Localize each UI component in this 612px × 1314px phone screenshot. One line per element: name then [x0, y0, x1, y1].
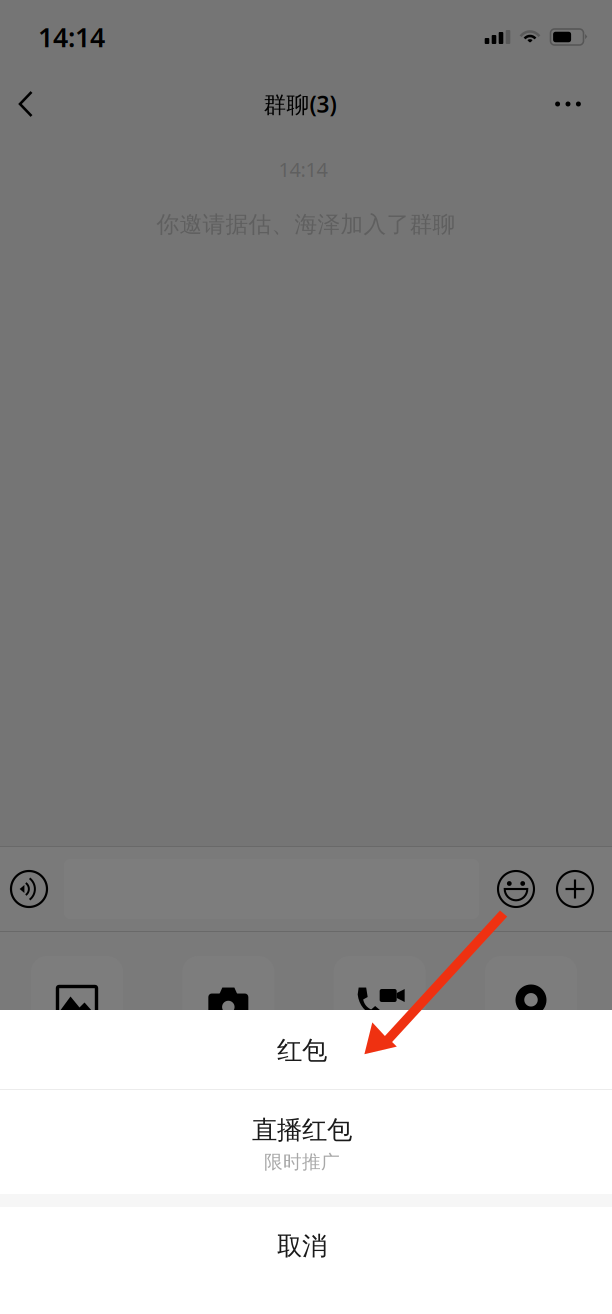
- button[interactable]: 直播红包: [0, 1090, 612, 1194]
- button[interactable]: Location: [485, 956, 577, 1048]
- staticText: 14:14: [38, 19, 105, 55]
- staticText: 直播红包: [252, 1114, 352, 1146]
- staticText: 群聊(3): [263, 89, 336, 119]
- staticText: 14:14: [278, 156, 327, 183]
- button[interactable]: Camera: [182, 956, 274, 1048]
- button[interactable]: Photos: [31, 956, 123, 1048]
- staticText: 红包: [277, 1035, 327, 1066]
- button[interactable]: Back: [0, 78, 52, 130]
- button[interactable]: Video call: [334, 956, 426, 1048]
- staticText: 限时推广: [264, 1151, 340, 1173]
- button[interactable]: More options: [556, 870, 594, 908]
- button[interactable]: Voice message: [10, 870, 48, 908]
- button[interactable]: 红包: [0, 1010, 612, 1089]
- button[interactable]: Emoji: [497, 870, 535, 908]
- button[interactable]: 取消: [0, 1207, 612, 1283]
- button[interactable]: More: [542, 78, 594, 130]
- staticText: 你邀请据估、海泽加入了群聊: [156, 211, 455, 238]
- staticText: 取消: [277, 1230, 327, 1261]
